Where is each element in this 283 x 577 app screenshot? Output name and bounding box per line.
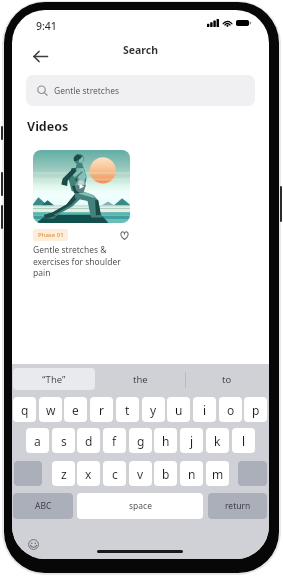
staticText: “The”: [42, 373, 66, 386]
button[interactable]: “The”: [13, 368, 95, 390]
button[interactable]: o: [219, 397, 242, 422]
button[interactable]: u: [167, 397, 190, 422]
button[interactable]: s: [52, 428, 75, 453]
staticText: Gentle stretches & exercises for shoulde…: [33, 244, 130, 278]
staticText: o: [227, 402, 235, 418]
staticText: Phase 01: [38, 231, 64, 239]
staticText: l: [242, 433, 246, 449]
staticText: to: [222, 373, 232, 386]
button[interactable]: Back: [25, 42, 55, 70]
staticText: the: [133, 373, 148, 386]
button[interactable]: v: [129, 461, 152, 486]
button[interactable]: Shift: [14, 461, 42, 486]
button[interactable]: b: [154, 461, 177, 486]
button[interactable]: k: [206, 428, 229, 453]
button[interactable]: space: [77, 493, 203, 519]
button[interactable]: c: [103, 461, 126, 486]
button[interactable]: a: [26, 428, 49, 453]
staticText: j: [190, 433, 194, 449]
button[interactable]: y: [142, 397, 165, 422]
staticText: space: [129, 500, 152, 512]
button[interactable]: p: [244, 397, 267, 422]
button[interactable]: m: [206, 461, 229, 486]
button[interactable]: z: [52, 461, 75, 486]
staticText: c: [112, 466, 118, 482]
button[interactable]: t: [116, 397, 139, 422]
button[interactable]: h: [154, 428, 177, 453]
button[interactable]: e: [64, 397, 87, 422]
button[interactable]: ABC: [13, 493, 73, 519]
staticText: m: [212, 466, 224, 482]
staticText: return: [225, 500, 251, 512]
button[interactable]: j: [180, 428, 203, 453]
staticText: e: [72, 402, 79, 418]
button[interactable]: Favourite: [118, 229, 130, 241]
button[interactable]: Backspace: [238, 461, 267, 486]
staticText: v: [137, 466, 144, 482]
button[interactable]: x: [77, 461, 100, 486]
staticText: z: [61, 466, 67, 482]
button[interactable]: r: [90, 397, 113, 422]
button[interactable]: d: [77, 428, 100, 453]
staticText: y: [150, 402, 157, 418]
button[interactable]: Play: [26, 143, 137, 285]
staticText: t: [125, 402, 130, 418]
staticText: f: [112, 433, 117, 449]
staticText: Videos: [27, 118, 69, 135]
staticText: s: [61, 433, 67, 449]
staticText: Search: [123, 43, 159, 57]
button[interactable]: Emoji: [25, 536, 41, 552]
button[interactable]: q: [13, 397, 36, 422]
staticText: b: [162, 466, 170, 482]
staticText: p: [252, 402, 260, 418]
button[interactable]: Play: [75, 180, 88, 193]
staticText: k: [214, 433, 221, 449]
button[interactable]: f: [103, 428, 126, 453]
staticText: 9:41: [36, 19, 57, 33]
button[interactable]: w: [39, 397, 62, 422]
button[interactable]: l: [232, 428, 255, 453]
staticText: n: [188, 466, 196, 482]
staticText: Gentle stretches: [54, 85, 120, 97]
staticText: x: [85, 466, 92, 482]
staticText: a: [34, 433, 41, 449]
staticText: g: [137, 433, 145, 449]
staticText: w: [46, 402, 56, 418]
staticText: u: [175, 402, 183, 418]
button[interactable]: n: [180, 461, 203, 486]
staticText: h: [162, 433, 170, 449]
staticText: ABC: [35, 500, 52, 512]
button[interactable]: g: [129, 428, 152, 453]
button[interactable]: Gentle stretches: [26, 75, 255, 106]
staticText: r: [99, 402, 104, 418]
button[interactable]: i: [193, 397, 216, 422]
staticText: q: [21, 402, 29, 418]
button[interactable]: to: [186, 368, 268, 390]
button[interactable]: return: [208, 493, 267, 519]
staticText: d: [85, 433, 93, 449]
button[interactable]: the: [95, 368, 185, 390]
staticText: i: [203, 402, 207, 418]
